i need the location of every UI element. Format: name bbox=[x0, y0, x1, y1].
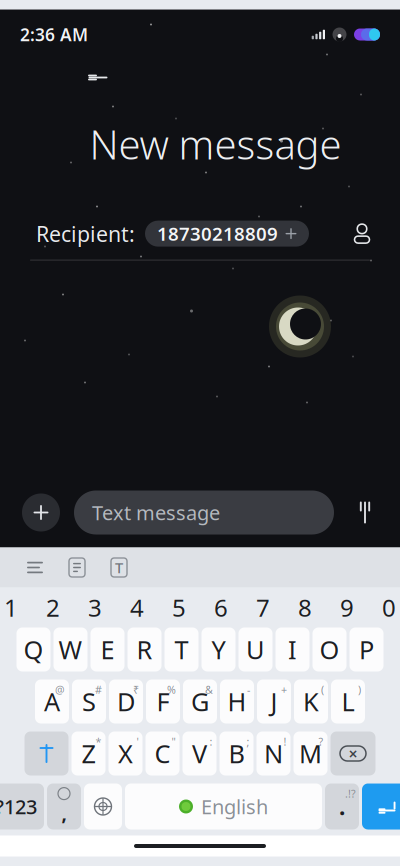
staticText: 8 bbox=[298, 592, 312, 623]
button[interactable]: 18730218809 bbox=[145, 221, 309, 247]
button[interactable]: 3 bbox=[78, 590, 112, 624]
button[interactable]: H bbox=[220, 679, 254, 723]
button[interactable]: Add attachment bbox=[22, 493, 60, 531]
button[interactable]: G bbox=[183, 679, 217, 723]
staticText: V bbox=[192, 737, 207, 770]
button[interactable]: B bbox=[219, 731, 253, 775]
staticText: L bbox=[341, 685, 354, 718]
staticText: R bbox=[136, 633, 152, 666]
staticText: U bbox=[246, 633, 265, 666]
button[interactable]: L bbox=[331, 679, 365, 723]
button[interactable]: 9 bbox=[330, 590, 364, 624]
button[interactable]: X bbox=[108, 731, 142, 775]
staticText: M bbox=[299, 737, 322, 770]
button[interactable]: Choose contact bbox=[342, 217, 382, 251]
button[interactable]: 4 bbox=[120, 590, 154, 624]
staticText: 6 bbox=[214, 592, 228, 623]
button[interactable]: W bbox=[53, 627, 87, 671]
staticText: 5 bbox=[172, 592, 186, 623]
staticText: B bbox=[228, 737, 244, 770]
staticText: 18730218809 bbox=[157, 221, 278, 246]
button[interactable]: 6 bbox=[204, 590, 238, 624]
staticText: A bbox=[44, 685, 60, 718]
button[interactable]: J bbox=[257, 679, 291, 723]
staticText: % bbox=[167, 682, 176, 697]
button[interactable]: Send bbox=[348, 495, 382, 529]
button[interactable]: S bbox=[72, 679, 106, 723]
button[interactable]: Clipboard bbox=[56, 551, 98, 583]
staticText: English bbox=[201, 793, 268, 820]
button[interactable]: Text message bbox=[74, 490, 334, 534]
staticText: ! bbox=[283, 734, 286, 749]
staticText: Z bbox=[81, 737, 95, 770]
staticText: ? bbox=[318, 734, 323, 749]
button[interactable]: P bbox=[349, 627, 383, 671]
button[interactable]: 5 bbox=[162, 590, 196, 624]
staticText: T bbox=[115, 558, 123, 577]
staticText: T bbox=[174, 633, 188, 666]
button[interactable]: Enter bbox=[362, 783, 400, 829]
staticText: H bbox=[227, 685, 246, 718]
staticText: 3 bbox=[88, 592, 102, 623]
button[interactable]: N bbox=[256, 731, 290, 775]
button[interactable]: 1 bbox=[0, 590, 28, 624]
staticText: J bbox=[270, 685, 277, 718]
staticText: Y bbox=[211, 633, 225, 666]
staticText: ) bbox=[358, 682, 361, 697]
button[interactable]: Z bbox=[71, 731, 105, 775]
button[interactable]: M bbox=[293, 731, 327, 775]
button[interactable]: Switch language bbox=[84, 783, 122, 829]
staticText: . bbox=[339, 791, 345, 821]
button[interactable]: E bbox=[90, 627, 124, 671]
button[interactable]: T bbox=[164, 627, 198, 671]
button[interactable]: Keyboard settings bbox=[14, 551, 56, 583]
button[interactable]: ?123 bbox=[0, 783, 44, 829]
staticText: F bbox=[156, 685, 169, 718]
button[interactable]: V bbox=[182, 731, 216, 775]
button[interactable]: Back bbox=[86, 59, 126, 95]
staticText: W bbox=[58, 633, 82, 666]
staticText: 2:36 AM bbox=[20, 23, 88, 46]
button[interactable]: D bbox=[109, 679, 143, 723]
button[interactable]: 2 bbox=[36, 590, 70, 624]
button[interactable]: 0 bbox=[372, 590, 400, 624]
button[interactable]: English bbox=[125, 783, 322, 829]
button[interactable]: A bbox=[35, 679, 69, 723]
button[interactable]: Period bbox=[325, 783, 359, 829]
staticText: ; bbox=[246, 734, 249, 749]
staticText: 9 bbox=[340, 592, 354, 623]
button[interactable]: 8 bbox=[288, 590, 322, 624]
staticText: O bbox=[319, 633, 339, 666]
staticText: 0 bbox=[382, 592, 396, 623]
button[interactable]: U bbox=[238, 627, 272, 671]
button[interactable]: K bbox=[294, 679, 328, 723]
button[interactable]: F bbox=[146, 679, 180, 723]
staticText: I bbox=[288, 633, 297, 666]
staticText: ' bbox=[136, 734, 138, 749]
staticText: * bbox=[95, 734, 101, 749]
staticText: X bbox=[118, 737, 133, 770]
button[interactable]: Shift bbox=[24, 731, 68, 775]
button[interactable]: Text editing bbox=[98, 551, 140, 583]
button[interactable]: I bbox=[275, 627, 309, 671]
button[interactable]: Emoji and comma bbox=[47, 783, 81, 829]
staticText: D bbox=[117, 685, 135, 718]
staticText: 4 bbox=[130, 592, 144, 623]
staticText: × bbox=[348, 743, 357, 764]
staticText: 2 bbox=[46, 592, 60, 623]
button[interactable]: C bbox=[145, 731, 179, 775]
staticText: Text message bbox=[92, 499, 220, 526]
button[interactable]: Y bbox=[201, 627, 235, 671]
staticText: # bbox=[95, 682, 102, 697]
button[interactable]: Backspace bbox=[330, 731, 375, 775]
staticText: P bbox=[359, 633, 374, 666]
staticText: 1 bbox=[4, 592, 18, 623]
staticText: & bbox=[205, 682, 213, 697]
staticText: ?123 bbox=[0, 793, 37, 820]
staticText: @ bbox=[55, 682, 65, 697]
button[interactable]: Q bbox=[16, 627, 50, 671]
button[interactable]: R bbox=[127, 627, 161, 671]
staticText: , bbox=[61, 801, 66, 825]
button[interactable]: O bbox=[312, 627, 346, 671]
button[interactable]: 7 bbox=[246, 590, 280, 624]
